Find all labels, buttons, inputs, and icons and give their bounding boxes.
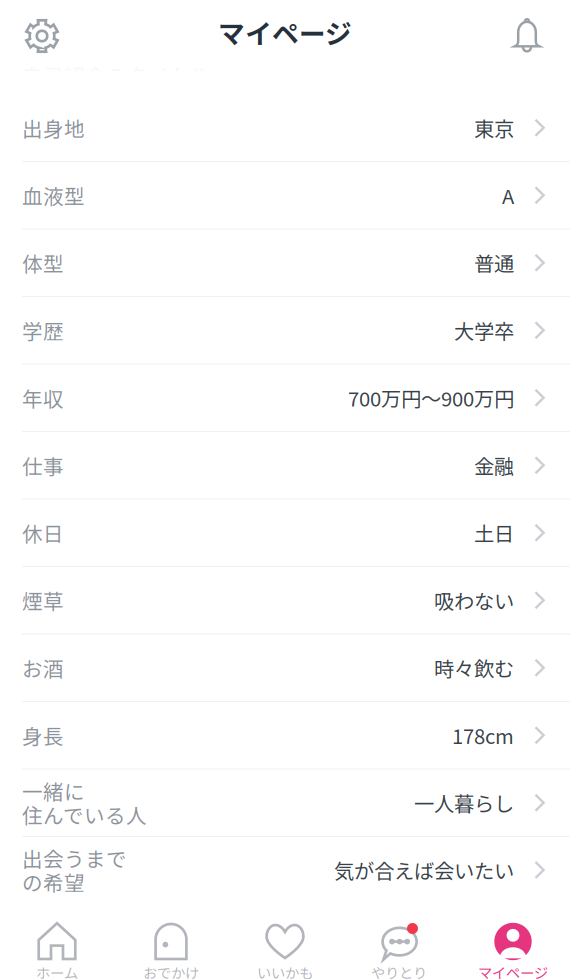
button[interactable]: やりとり	[342, 904, 456, 979]
button[interactable]: 学歴	[0, 297, 570, 363]
staticText: 血液型	[22, 180, 85, 210]
staticText: 煙草	[22, 585, 64, 615]
staticText: お酒	[22, 653, 64, 683]
staticText: マイページ	[478, 962, 548, 979]
button[interactable]: 出会うまで	[0, 837, 570, 903]
button[interactable]: 血液型	[0, 162, 570, 228]
staticText: 気が合えば会いたい	[334, 855, 514, 885]
button[interactable]: 一緒に	[0, 769, 570, 836]
staticText: やりとり	[371, 962, 427, 979]
staticText: 身長	[22, 720, 64, 750]
button[interactable]: 身長	[0, 702, 570, 768]
staticText: 土日	[474, 518, 514, 547]
staticText: 700万円〜900万円	[348, 383, 514, 412]
button[interactable]: 設定	[16, 8, 68, 60]
staticText: 休日	[22, 518, 64, 548]
button[interactable]: マイページ	[456, 904, 570, 979]
staticText: の希望	[22, 867, 85, 897]
button[interactable]: お知らせ	[501, 8, 553, 60]
button[interactable]: お酒	[0, 634, 570, 701]
staticText: ホーム	[36, 962, 78, 979]
staticText: 学歴	[22, 315, 64, 345]
staticText: 一人暮らし	[414, 788, 514, 817]
staticText: 178cm	[452, 721, 514, 750]
staticText: 出会うまで	[22, 843, 127, 873]
button[interactable]: 仕事	[0, 432, 570, 498]
staticText: 仕事	[22, 450, 64, 480]
staticText: 体型	[22, 248, 64, 278]
staticText: マイページ	[218, 13, 352, 51]
button[interactable]: 煙草	[0, 567, 570, 633]
staticText: A	[502, 181, 514, 210]
staticText: 時々飲む	[434, 653, 514, 682]
button[interactable]: いいかも	[228, 904, 342, 979]
staticText: 吸わない	[434, 586, 514, 615]
staticText: 年収	[22, 383, 64, 413]
staticText: 大学卒	[454, 316, 514, 345]
staticText: 東京	[474, 113, 514, 142]
button[interactable]: ホーム	[0, 904, 114, 979]
staticText: 住んでいる人	[22, 800, 147, 829]
staticText: 出身地	[22, 113, 85, 143]
staticText: いいかも	[257, 962, 313, 979]
button[interactable]: おでかけ	[114, 904, 228, 979]
button[interactable]: 休日	[0, 499, 570, 566]
button[interactable]: 年収	[0, 364, 570, 431]
staticText: 一緒に	[22, 776, 85, 806]
button[interactable]: 出身地	[0, 94, 570, 161]
staticText: おでかけ	[143, 962, 199, 979]
staticText: 金融	[474, 451, 514, 480]
staticText: 普通	[474, 248, 514, 277]
button[interactable]: 体型	[0, 229, 570, 296]
